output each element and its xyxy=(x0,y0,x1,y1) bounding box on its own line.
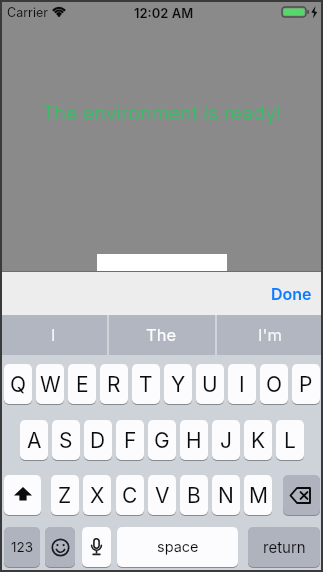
button[interactable]: Y xyxy=(164,364,192,404)
button[interactable]: The xyxy=(108,315,215,355)
button[interactable]: R xyxy=(100,364,128,404)
button[interactable]: V xyxy=(148,475,176,515)
staticText: J xyxy=(220,428,232,453)
button[interactable]: U xyxy=(196,364,224,404)
button[interactable]: J xyxy=(212,420,240,460)
staticText: U xyxy=(202,372,218,397)
staticText: D xyxy=(90,428,106,453)
button[interactable]: G xyxy=(148,420,176,460)
button[interactable]: Done xyxy=(251,272,323,315)
staticText: L xyxy=(284,428,296,453)
button[interactable]: Q xyxy=(4,364,32,404)
button[interactable]: S xyxy=(52,420,80,460)
button[interactable]: W xyxy=(36,364,64,404)
button[interactable]: D xyxy=(84,420,112,460)
staticText: P xyxy=(299,372,313,397)
staticText: Carrier xyxy=(7,5,48,20)
button[interactable]: I xyxy=(0,315,107,355)
staticText: Input Text... xyxy=(110,268,183,272)
staticText: C xyxy=(122,483,138,508)
button[interactable]: B xyxy=(180,475,208,515)
button[interactable]: C xyxy=(116,475,144,515)
staticText: space xyxy=(157,538,199,556)
staticText: E xyxy=(76,372,89,397)
staticText: N xyxy=(218,483,234,508)
button[interactable]: Z xyxy=(51,475,79,515)
staticText: G xyxy=(154,428,170,453)
button[interactable]: P xyxy=(292,364,320,404)
staticText: I'm xyxy=(258,325,282,345)
button[interactable]: A xyxy=(20,420,48,460)
button[interactable]: return xyxy=(248,527,320,567)
staticText: The environment is ready! xyxy=(42,101,282,125)
button[interactable]: O xyxy=(260,364,288,404)
staticText: M xyxy=(249,483,268,508)
staticText: W xyxy=(40,372,61,397)
staticText: The xyxy=(146,325,177,345)
staticText: T xyxy=(139,372,153,397)
staticText: Z xyxy=(58,483,72,508)
staticText: A xyxy=(27,428,42,453)
button[interactable]: 123 xyxy=(4,527,40,567)
button[interactable]: N xyxy=(212,475,240,515)
button[interactable] xyxy=(4,475,41,515)
staticText: Y xyxy=(171,372,186,397)
staticText: K xyxy=(251,428,266,453)
staticText: H xyxy=(186,428,202,453)
button[interactable]: I xyxy=(228,364,256,404)
button[interactable]: X xyxy=(83,475,111,515)
button[interactable]: L xyxy=(276,420,304,460)
staticText: S xyxy=(59,428,73,453)
staticText: F xyxy=(124,428,137,453)
staticText: 12:02 AM xyxy=(134,5,194,21)
staticText: R xyxy=(107,372,121,397)
button[interactable]: E xyxy=(68,364,96,404)
button[interactable]: F xyxy=(116,420,144,460)
button[interactable]: K xyxy=(244,420,272,460)
staticText: Q xyxy=(10,372,27,397)
button[interactable]: space xyxy=(117,527,238,567)
staticText: O xyxy=(266,372,283,397)
button[interactable]: I'm xyxy=(216,315,323,355)
staticText: B xyxy=(187,483,201,508)
button[interactable]: M xyxy=(244,475,272,515)
button[interactable] xyxy=(283,475,320,515)
staticText: return xyxy=(263,538,306,556)
button[interactable]: Input Text... xyxy=(97,254,227,272)
button[interactable]: T xyxy=(132,364,160,404)
staticText: I xyxy=(239,372,245,397)
button[interactable] xyxy=(45,527,75,567)
button[interactable]: H xyxy=(180,420,208,460)
staticText: 123 xyxy=(11,539,34,555)
staticText: X xyxy=(90,483,105,508)
staticText: I xyxy=(51,325,56,345)
staticText: Done xyxy=(271,284,312,303)
button[interactable] xyxy=(82,527,111,567)
staticText: V xyxy=(155,483,170,508)
